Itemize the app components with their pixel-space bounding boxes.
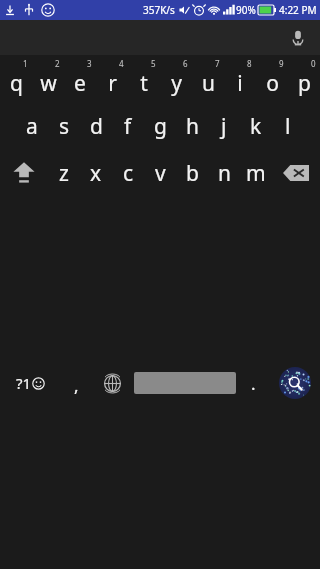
button[interactable]: u (192, 55, 224, 103)
button[interactable]: o (256, 55, 288, 103)
button[interactable]: b (176, 149, 208, 197)
staticText: e (74, 69, 86, 98)
button[interactable]: q (0, 55, 32, 103)
staticText: w (40, 69, 57, 98)
staticText: 4:22 PM (279, 3, 317, 17)
button[interactable]: Voice input (284, 24, 312, 52)
staticText: 8 (247, 58, 252, 69)
button[interactable]: w (32, 55, 64, 103)
button[interactable]: c (112, 149, 144, 197)
staticText: i (237, 69, 243, 98)
button[interactable]: k (240, 103, 272, 149)
staticText: 1 (23, 58, 28, 69)
button[interactable]: Space (132, 197, 237, 569)
button[interactable]: Shift (0, 149, 48, 197)
staticText: y (171, 69, 182, 98)
staticText: . (251, 372, 256, 395)
button[interactable]: , (60, 197, 93, 569)
staticText: x (90, 159, 102, 188)
staticText: n (218, 159, 231, 188)
button[interactable]: y (160, 55, 192, 103)
staticText: k (250, 112, 262, 141)
button[interactable]: Backspace (272, 149, 320, 197)
button[interactable]: r (96, 55, 128, 103)
staticText: 7 (215, 58, 220, 69)
staticText: b (186, 159, 199, 188)
staticText: u (202, 69, 215, 98)
button[interactable]: Change language (93, 197, 132, 569)
button[interactable]: ?1 (0, 197, 60, 569)
staticText: z (59, 159, 69, 188)
staticText: 90% (236, 3, 256, 17)
staticText: 5 (151, 58, 156, 69)
staticText: 0 (311, 58, 316, 69)
staticText: g (154, 112, 167, 141)
button[interactable]: i (224, 55, 256, 103)
staticText: , (74, 374, 79, 397)
staticText: 9 (279, 58, 284, 69)
button[interactable]: v (144, 149, 176, 197)
button[interactable]: m (240, 149, 272, 197)
staticText: d (90, 112, 103, 141)
staticText: c (123, 159, 134, 188)
button[interactable]: f (112, 103, 144, 149)
button[interactable]: z (48, 149, 80, 197)
button[interactable]: j (208, 103, 240, 149)
staticText: 2 (55, 58, 60, 69)
staticText: f (124, 112, 132, 141)
button[interactable]: h (176, 103, 208, 149)
button[interactable]: t (128, 55, 160, 103)
button[interactable]: e (64, 55, 96, 103)
staticText: t (140, 69, 148, 98)
staticText: 357K/s (143, 3, 175, 17)
button[interactable]: g (144, 103, 176, 149)
button[interactable]: x (80, 149, 112, 197)
button[interactable]: s (48, 103, 80, 149)
staticText: 6 (183, 58, 188, 69)
button[interactable]: a (16, 103, 48, 149)
button[interactable]: l (272, 103, 304, 149)
button[interactable]: . (237, 197, 270, 569)
staticText: l (285, 112, 291, 141)
staticText: h (186, 112, 199, 141)
staticText: r (108, 69, 117, 98)
staticText: s (59, 112, 70, 141)
staticText: a (26, 112, 38, 141)
staticText: ?1 (16, 373, 32, 393)
button[interactable]: Search (270, 197, 320, 569)
staticText: m (246, 159, 266, 188)
staticText: q (10, 69, 23, 98)
button[interactable]: p (288, 55, 320, 103)
button[interactable]: n (208, 149, 240, 197)
staticText: v (155, 159, 166, 188)
button[interactable]: d (80, 103, 112, 149)
staticText: p (298, 69, 311, 98)
staticText: j (221, 112, 227, 141)
staticText: 3 (87, 58, 92, 69)
staticText: 4 (119, 58, 124, 69)
staticText: o (266, 69, 279, 98)
